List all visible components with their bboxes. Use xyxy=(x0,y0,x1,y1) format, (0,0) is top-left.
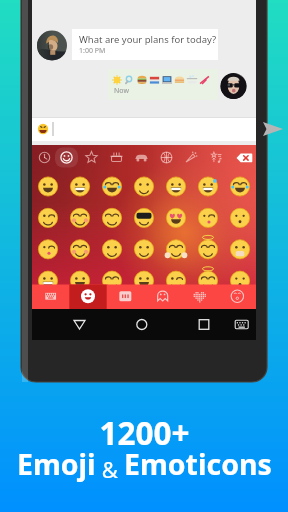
button[interactable]: Smileys xyxy=(57,145,82,172)
button[interactable]: Stickers xyxy=(145,285,182,309)
staticText: Emoticons xyxy=(124,445,272,484)
button[interactable]: Symbols xyxy=(207,145,232,172)
staticText: 1200+ xyxy=(99,411,190,454)
button[interactable]: Home xyxy=(112,309,174,340)
button[interactable]: Emoji xyxy=(70,285,108,309)
button[interactable]: Sports xyxy=(157,145,182,172)
button[interactable]: Food xyxy=(107,145,132,172)
button[interactable]: Recents xyxy=(174,309,236,340)
button[interactable]: Favourites xyxy=(82,145,107,172)
staticText: Emoji xyxy=(17,445,96,484)
button[interactable]: GIF xyxy=(108,285,145,309)
staticText: 1:00 PM xyxy=(79,46,106,56)
staticText: What are your plans for today? xyxy=(79,33,217,46)
button[interactable]: Celebration xyxy=(182,145,207,172)
button[interactable]: Switch keyboard xyxy=(236,309,256,340)
button[interactable]: Themes xyxy=(182,285,219,309)
button[interactable] xyxy=(32,117,256,141)
button[interactable]: Settings xyxy=(219,285,256,309)
staticText: Now xyxy=(114,86,129,96)
button[interactable]: Recent xyxy=(32,145,57,172)
staticText: & xyxy=(96,454,124,484)
button[interactable]: Keyboard xyxy=(32,285,70,309)
button[interactable]: Back xyxy=(32,309,112,340)
button[interactable]: Backspace xyxy=(232,145,256,172)
button[interactable]: Travel xyxy=(132,145,157,172)
